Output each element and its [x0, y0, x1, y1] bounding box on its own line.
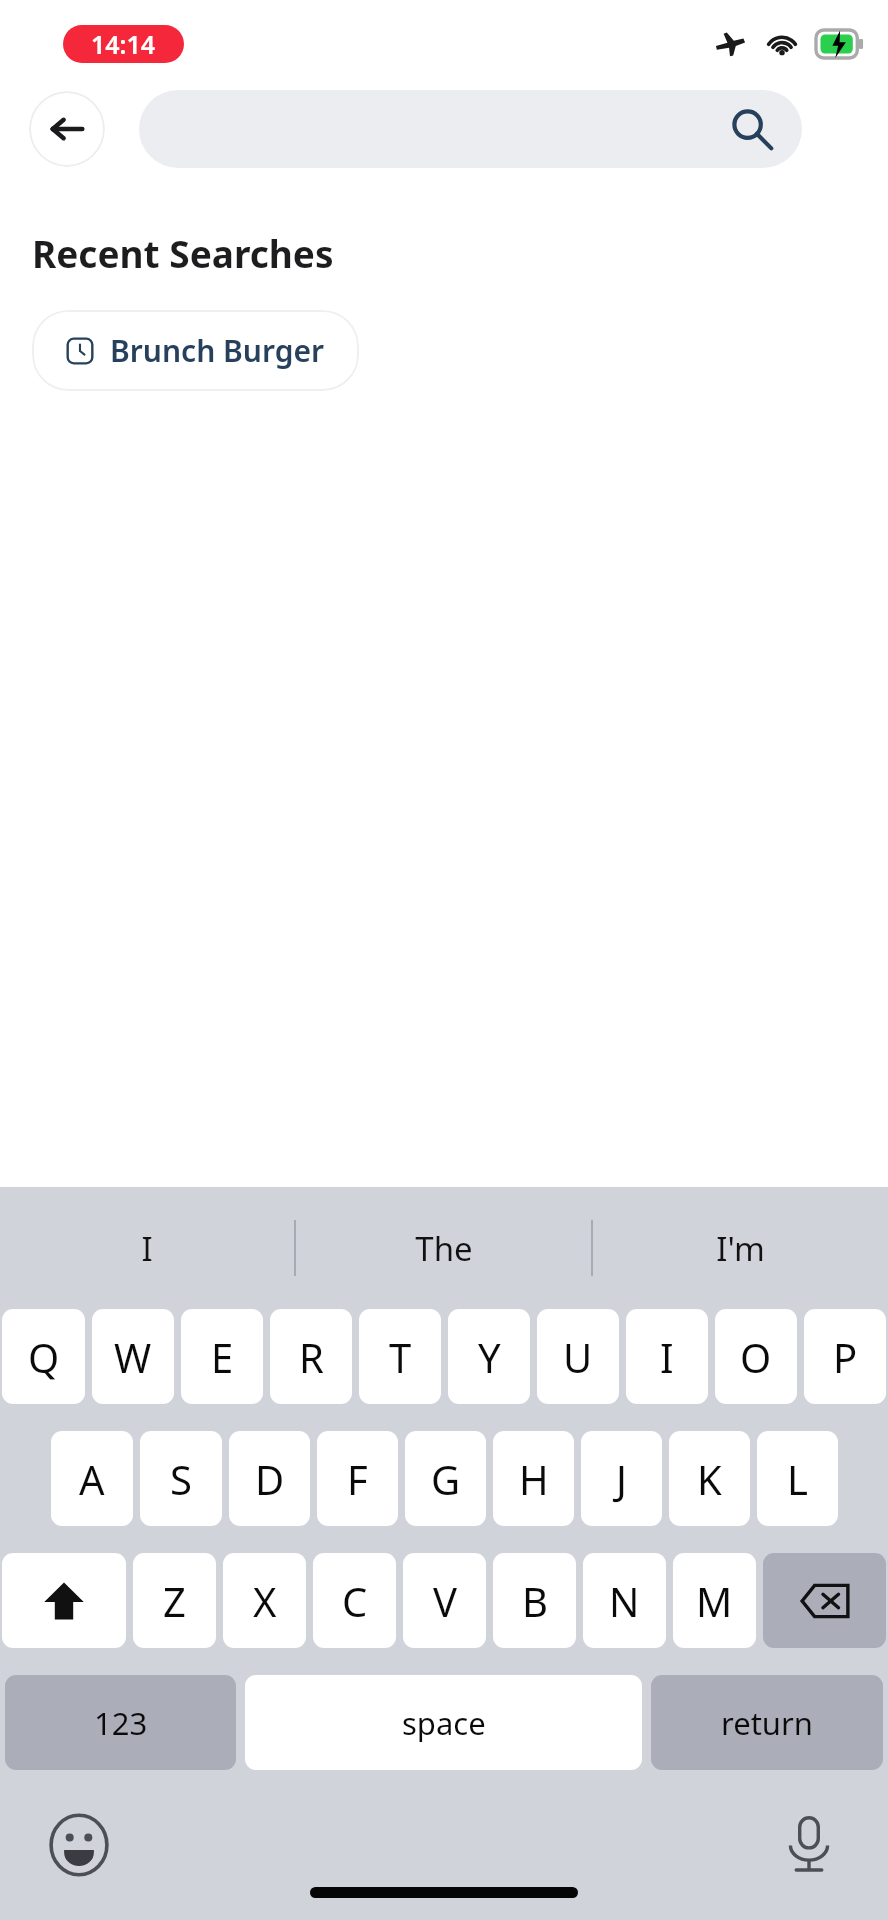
button[interactable]: 123 — [5, 1675, 236, 1770]
button[interactable]: L — [757, 1431, 838, 1526]
button[interactable]: Search — [139, 90, 802, 168]
staticText: K — [697, 1452, 722, 1506]
staticText: S — [170, 1452, 192, 1506]
staticText: W — [114, 1330, 152, 1384]
staticText: Brunch Burger — [110, 330, 325, 371]
button[interactable]: D — [229, 1431, 310, 1526]
button[interactable]: I — [0, 1187, 294, 1309]
staticText: Z — [163, 1574, 186, 1628]
button[interactable]: Z — [133, 1553, 216, 1648]
button[interactable]: K — [669, 1431, 750, 1526]
staticText: C — [342, 1574, 368, 1628]
staticText: A — [79, 1452, 105, 1506]
staticText: P — [833, 1330, 858, 1384]
button[interactable]: Emoji — [46, 1812, 112, 1878]
staticText: X — [253, 1574, 277, 1628]
staticText: M — [696, 1574, 733, 1628]
staticText: return — [721, 1702, 813, 1744]
button[interactable]: P — [804, 1309, 886, 1404]
button[interactable]: H — [493, 1431, 574, 1526]
button[interactable]: The — [296, 1187, 591, 1309]
button[interactable]: R — [270, 1309, 352, 1404]
button[interactable]: space — [245, 1675, 642, 1770]
staticText: E — [211, 1330, 234, 1384]
button[interactable]: N — [583, 1553, 666, 1648]
staticText: U — [563, 1330, 593, 1384]
staticText: I'm — [716, 1226, 765, 1271]
button[interactable]: G — [405, 1431, 486, 1526]
button[interactable]: F — [317, 1431, 398, 1526]
button[interactable]: I — [626, 1309, 708, 1404]
staticText: Q — [28, 1330, 60, 1384]
staticText: N — [609, 1574, 640, 1628]
staticText: F — [347, 1452, 368, 1506]
staticText: 14:14 — [91, 27, 156, 61]
staticText: R — [299, 1330, 324, 1384]
staticText: V — [433, 1574, 457, 1628]
other: Search — [728, 105, 776, 153]
button[interactable]: Y — [448, 1309, 530, 1404]
staticText: 123 — [94, 1702, 148, 1744]
button[interactable]: A — [51, 1431, 133, 1526]
button[interactable]: I'm — [593, 1187, 888, 1309]
button[interactable]: O — [715, 1309, 797, 1404]
button[interactable]: T — [359, 1309, 441, 1404]
button[interactable]: X — [223, 1553, 306, 1648]
button[interactable]: V — [403, 1553, 486, 1648]
staticText: T — [389, 1330, 412, 1384]
button[interactable]: return — [651, 1675, 883, 1770]
button[interactable]: Brunch Burger — [32, 310, 359, 391]
button[interactable]: B — [493, 1553, 576, 1648]
button[interactable]: U — [537, 1309, 619, 1404]
staticText: D — [255, 1452, 285, 1506]
button[interactable]: Back — [29, 91, 105, 167]
button[interactable]: S — [140, 1431, 222, 1526]
button[interactable]: Dictation — [776, 1812, 842, 1878]
button[interactable]: W — [92, 1309, 174, 1404]
button[interactable]: Q — [2, 1309, 85, 1404]
button[interactable]: Shift — [2, 1553, 126, 1648]
button[interactable]: Backspace — [763, 1553, 886, 1648]
staticText: B — [522, 1574, 548, 1628]
staticText: Y — [478, 1330, 501, 1384]
staticText: space — [402, 1702, 486, 1744]
staticText: I — [141, 1226, 153, 1271]
staticText: O — [740, 1330, 772, 1384]
staticText: G — [431, 1452, 461, 1506]
staticText: J — [616, 1452, 627, 1506]
staticText: Recent Searches — [32, 228, 334, 278]
staticText: I — [660, 1330, 674, 1384]
button[interactable]: M — [673, 1553, 756, 1648]
button[interactable]: E — [181, 1309, 263, 1404]
staticText: L — [787, 1452, 808, 1506]
staticText: H — [519, 1452, 549, 1506]
button[interactable]: J — [581, 1431, 662, 1526]
button[interactable]: C — [313, 1553, 396, 1648]
staticText: The — [415, 1226, 473, 1271]
